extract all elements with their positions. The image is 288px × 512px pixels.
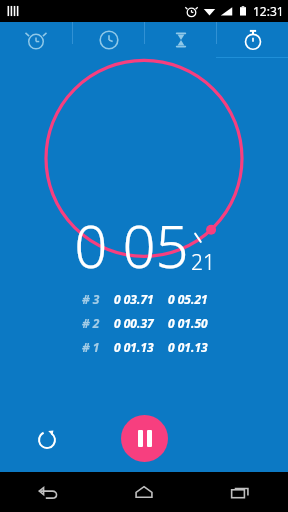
- button[interactable]: Back: [0, 472, 96, 512]
- button[interactable]: # 1: [0, 335, 288, 359]
- button[interactable]: # 3: [0, 287, 288, 311]
- staticText: 0 01.50: [168, 315, 208, 331]
- button[interactable]: Alarm: [0, 22, 72, 58]
- staticText: 0 03.71: [114, 291, 162, 307]
- staticText: 0 01.13: [114, 339, 162, 355]
- button[interactable]: Stopwatch: [217, 22, 288, 58]
- button[interactable]: Recents: [192, 472, 288, 512]
- staticText: 0 01.13: [168, 339, 208, 355]
- staticText: 21: [191, 248, 215, 277]
- staticText: 0 05.21: [168, 291, 208, 307]
- button[interactable]: Home: [96, 472, 192, 512]
- button[interactable]: Timer: [145, 22, 216, 58]
- staticText: # 1: [82, 339, 106, 355]
- staticText: # 2: [82, 315, 106, 331]
- button[interactable]: # 2: [0, 311, 288, 335]
- button[interactable]: World clock: [73, 22, 144, 58]
- staticText: 12:31: [253, 3, 284, 19]
- button[interactable]: Reset: [30, 423, 64, 457]
- staticText: 0 00.37: [114, 315, 162, 331]
- staticText: # 3: [82, 291, 106, 307]
- staticText: 0 05: [74, 206, 189, 285]
- button[interactable]: Pause: [121, 415, 168, 462]
